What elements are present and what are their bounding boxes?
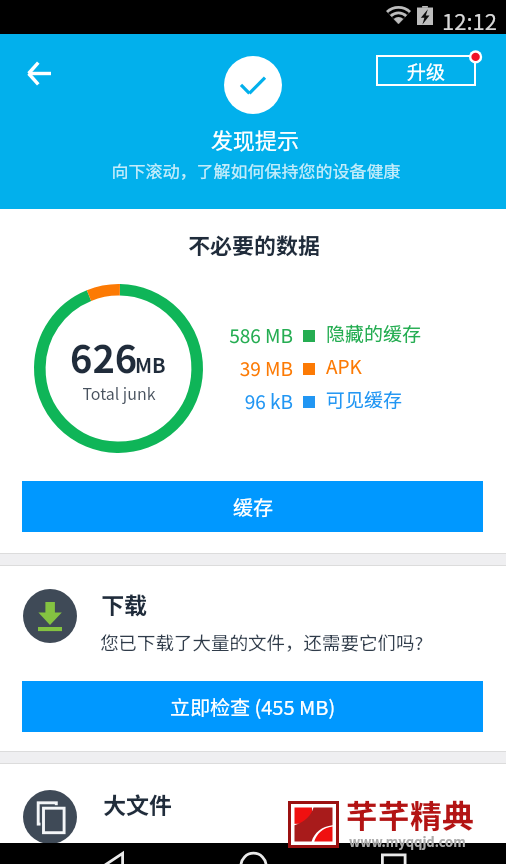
staticText: 立即检查 (455 MB) — [170, 692, 336, 721]
staticText: 下载 — [101, 587, 147, 620]
staticText: 隐藏的缓存 — [326, 319, 422, 347]
staticText: 您已下载了大量的文件，还需要它们吗? — [100, 629, 424, 656]
staticText: 升级 — [407, 57, 446, 85]
staticText: 626 — [70, 329, 138, 384]
button[interactable]: Home — [220, 843, 286, 864]
button[interactable]: Recent apps — [360, 843, 426, 864]
button[interactable]: Back — [80, 843, 146, 864]
staticText: www.myqqjd.com — [349, 832, 466, 851]
staticText: 大文件 — [103, 787, 172, 820]
button[interactable]: Back — [16, 50, 62, 96]
staticText: 向下滚动，了解如何保持您的设备健康 — [56, 158, 456, 183]
staticText: APK — [326, 352, 362, 380]
button[interactable]: 立即检查 (455 MB) — [22, 681, 483, 732]
staticText: 缓存 — [233, 492, 273, 521]
button[interactable] — [23, 589, 77, 643]
staticText: 586 MB — [193, 321, 293, 349]
staticText: MB — [135, 350, 166, 379]
staticText: 96 kB — [193, 387, 293, 415]
staticText: Total junk — [0, 381, 319, 404]
staticText: 不必要的数据 — [54, 228, 454, 260]
staticText: 发现提示 — [55, 123, 455, 155]
button[interactable]: 升级 — [376, 55, 476, 86]
staticText: 可见缓存 — [326, 385, 403, 413]
staticText: 39 MB — [193, 354, 293, 382]
staticText: 芊芊精典 — [346, 791, 475, 837]
staticText: 12:12 — [442, 4, 497, 36]
button[interactable]: 缓存 — [22, 481, 483, 532]
button[interactable] — [23, 790, 77, 844]
